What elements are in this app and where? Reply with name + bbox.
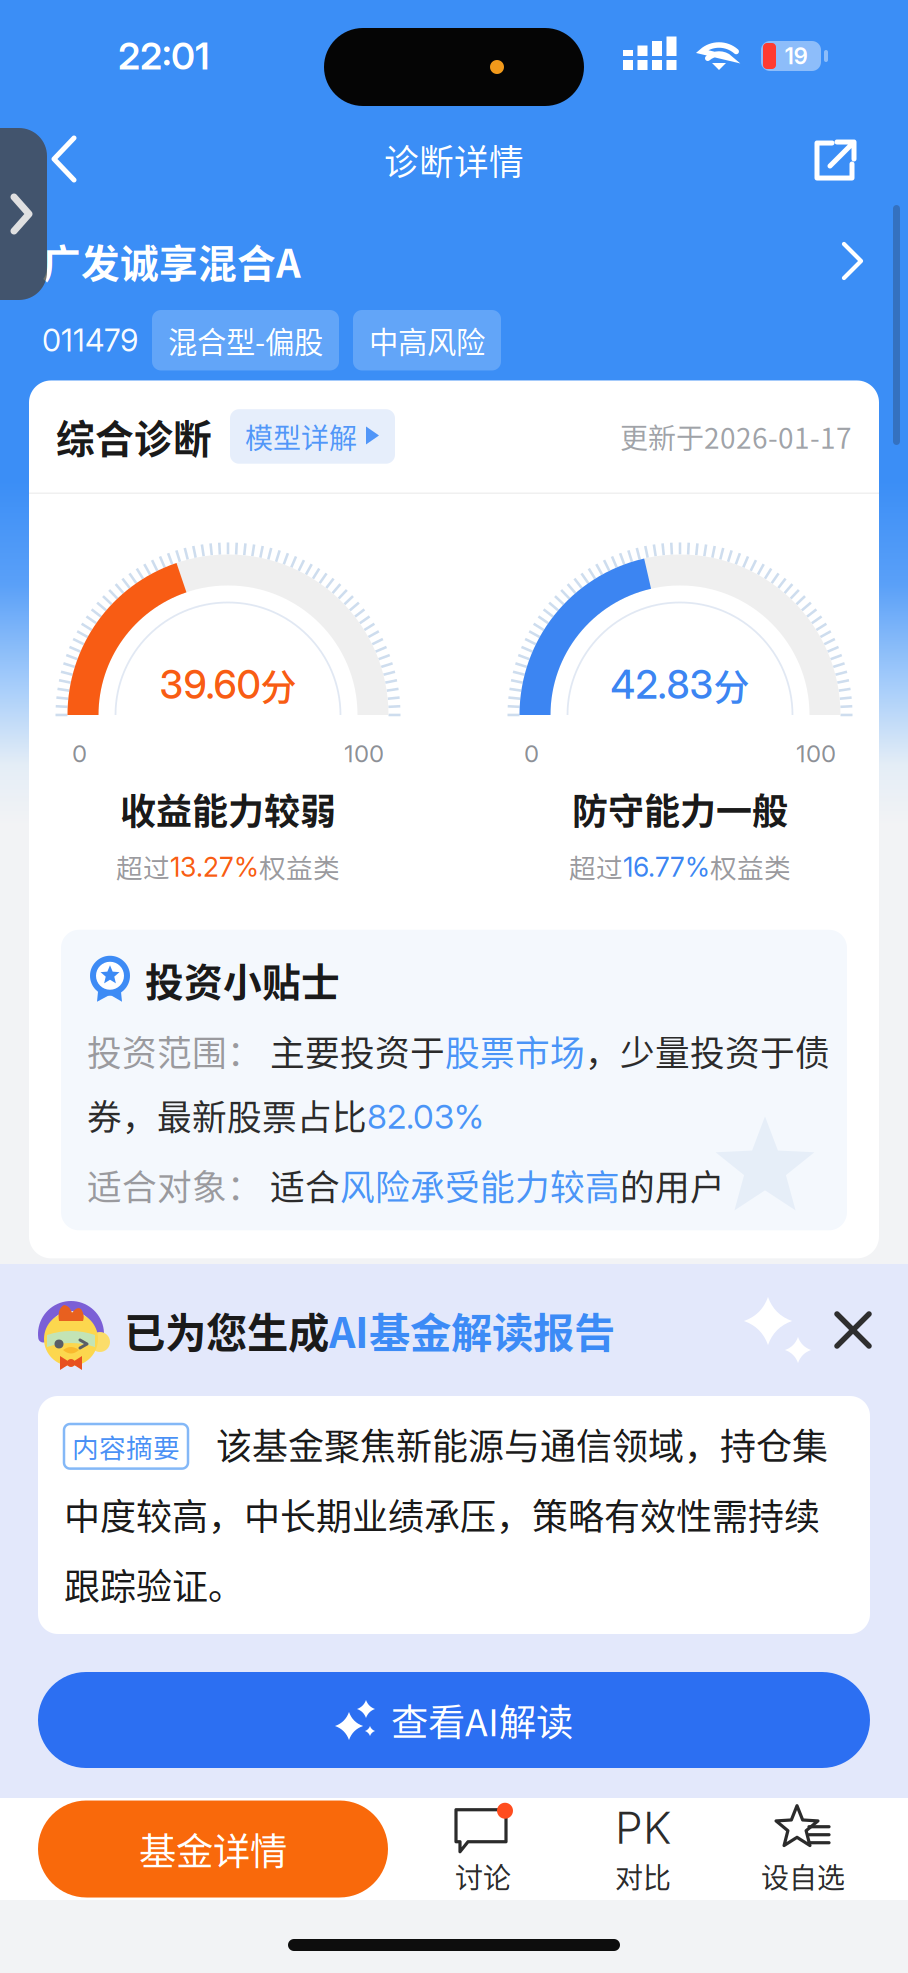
- staticText: 设自选: [761, 1856, 845, 1896]
- button[interactable]: 设自选: [738, 1798, 868, 1900]
- staticText: 内容摘要: [72, 1427, 180, 1466]
- staticText: 19: [784, 42, 807, 70]
- staticText: 42.83分: [610, 660, 749, 710]
- staticText: 投资范围： 主要投资于股票市场，少量投资于债券，最新股票占比82.03%: [87, 1026, 830, 1140]
- staticText: 已为您生成AI基金解读报告: [124, 1300, 615, 1360]
- staticText: PK: [615, 1801, 671, 1854]
- staticText: 适合对象： 适合风险承受能力较高的用户: [87, 1160, 725, 1210]
- staticText: 内容摘要 该基金聚焦新能源与通信领域，持仓集中度较高，中长期业绩承压，策略有效性…: [64, 1418, 828, 1610]
- button[interactable]: 讨论: [418, 1798, 548, 1900]
- staticText: 超过13.27%权益类: [116, 847, 340, 886]
- staticText: 更新于2026-01-17: [620, 416, 852, 457]
- staticText: 0: [524, 739, 539, 768]
- staticText: 0: [72, 739, 87, 768]
- button[interactable]: PK: [578, 1798, 708, 1900]
- staticText: 对比: [615, 1856, 671, 1896]
- staticText: 广发诚享混合A: [42, 233, 301, 289]
- button[interactable]: 模型详解: [230, 409, 395, 464]
- staticText: 查看AI解读: [391, 1693, 573, 1747]
- staticText: 收益能力较弱: [120, 783, 336, 835]
- staticText: 011479: [42, 322, 138, 359]
- button[interactable]: 关闭: [816, 1293, 890, 1367]
- staticText: 39.60分: [159, 660, 296, 710]
- button[interactable]: 查看AI解读: [0, 1672, 908, 1768]
- staticText: 模型详解: [245, 416, 357, 457]
- staticText: 100: [344, 739, 384, 768]
- staticText: 投资小贴士: [145, 952, 340, 1008]
- staticText: 中高风险: [369, 319, 485, 361]
- button[interactable]: 广发诚享混合A: [0, 230, 908, 292]
- staticText: 讨论: [455, 1856, 511, 1896]
- staticText: 综合诊断: [56, 408, 212, 464]
- button[interactable]: 返回: [22, 114, 108, 206]
- staticText: 诊断详情: [384, 135, 524, 185]
- staticText: 基金详情: [139, 1822, 287, 1876]
- staticText: 防守能力一般: [572, 783, 788, 835]
- staticText: 22:01: [118, 33, 210, 79]
- staticText: 混合型-偏股: [168, 319, 323, 361]
- staticText: 超过16.77%权益类: [569, 847, 791, 886]
- button[interactable]: 基金详情: [38, 1800, 388, 1897]
- button[interactable]: 分享: [780, 112, 886, 208]
- staticText: 100: [796, 739, 836, 768]
